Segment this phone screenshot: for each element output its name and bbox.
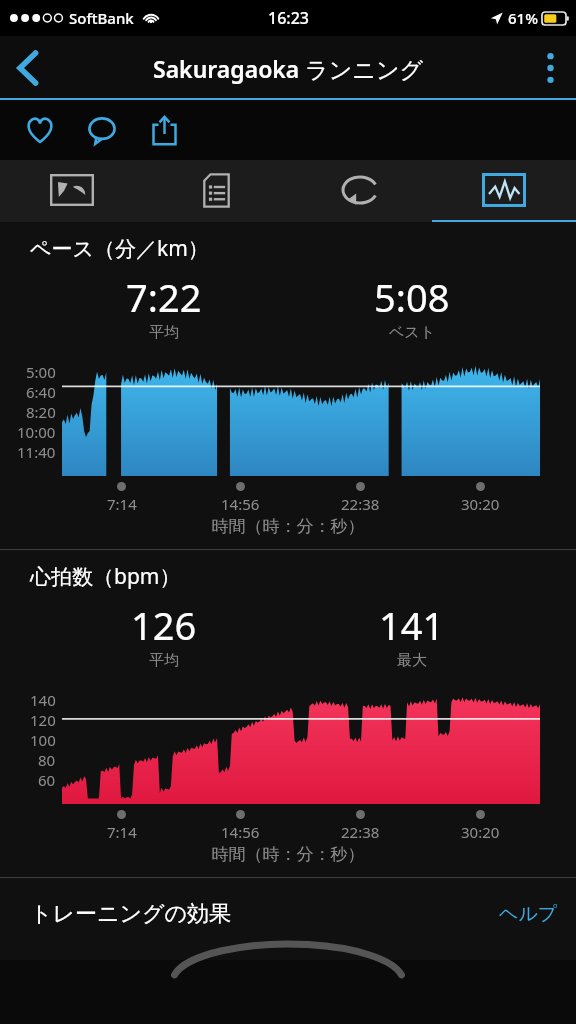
button[interactable]: Like: [18, 108, 62, 152]
button[interactable]: Back: [0, 36, 56, 100]
staticText: 30:20: [461, 822, 500, 842]
staticText: 61%: [508, 8, 538, 28]
staticText: Sakuragaoka ランニング: [153, 53, 423, 84]
staticText: ベスト: [389, 323, 436, 342]
staticText: 100: [30, 730, 56, 750]
staticText: 7:22: [126, 271, 202, 323]
button[interactable]: Laps tab: [288, 160, 432, 220]
staticText: 5:08: [374, 271, 450, 323]
staticText: 126: [131, 599, 197, 651]
staticText: 14:56: [221, 822, 260, 842]
staticText: 30:20: [461, 494, 500, 514]
staticText: SoftBank: [69, 8, 134, 28]
staticText: ヘルプ: [499, 902, 558, 926]
staticText: 6:40: [26, 382, 56, 402]
staticText: 平均: [149, 323, 179, 342]
button[interactable]: ヘルプ: [481, 892, 576, 936]
staticText: 平均: [149, 651, 179, 670]
staticText: 最大: [397, 651, 427, 670]
button[interactable]: Map tab: [0, 160, 144, 220]
staticText: ペース（分／km）: [30, 234, 209, 263]
staticText: 時間（時：分：秒）: [0, 844, 576, 865]
staticText: 10:00: [17, 422, 56, 442]
button[interactable]: Comment: [80, 108, 124, 152]
button[interactable]: Charts tab: [432, 160, 576, 220]
staticText: 22:38: [341, 494, 380, 514]
staticText: 7:14: [107, 494, 137, 514]
staticText: 14:56: [221, 494, 260, 514]
staticText: 60: [38, 770, 56, 790]
staticText: 7:14: [107, 822, 137, 842]
button[interactable]: More options: [524, 36, 576, 100]
staticText: 22:38: [341, 822, 380, 842]
button[interactable]: Details tab: [144, 160, 288, 220]
staticText: 16:23: [268, 7, 309, 29]
staticText: 80: [38, 750, 56, 770]
staticText: 11:40: [17, 442, 56, 462]
staticText: 120: [30, 710, 56, 730]
staticText: 5:00: [26, 362, 56, 382]
staticText: 8:20: [26, 402, 56, 422]
staticText: トレーニングの効果: [30, 900, 232, 928]
staticText: 140: [30, 690, 56, 710]
button[interactable]: Share: [142, 108, 186, 152]
staticText: 141: [379, 599, 445, 651]
staticText: 時間（時：分：秒）: [0, 516, 576, 537]
staticText: 心拍数（bpm）: [30, 562, 181, 591]
